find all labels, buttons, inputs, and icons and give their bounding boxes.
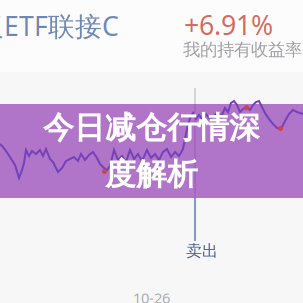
staticText: 卖出 bbox=[186, 241, 218, 261]
staticText: 度解析 bbox=[105, 155, 198, 193]
staticText: 创业板ETF联接C bbox=[0, 8, 119, 43]
staticText: 10-26 bbox=[133, 288, 170, 303]
staticText: 我的持有收益率 bbox=[183, 39, 302, 60]
staticText: +6.91% bbox=[184, 7, 273, 42]
button[interactable]: 创业板ETF联接C bbox=[0, 8, 119, 43]
button[interactable]: 今日减仓行情深 bbox=[0, 104, 303, 198]
staticText: 今日减仓行情深 bbox=[43, 109, 260, 146]
